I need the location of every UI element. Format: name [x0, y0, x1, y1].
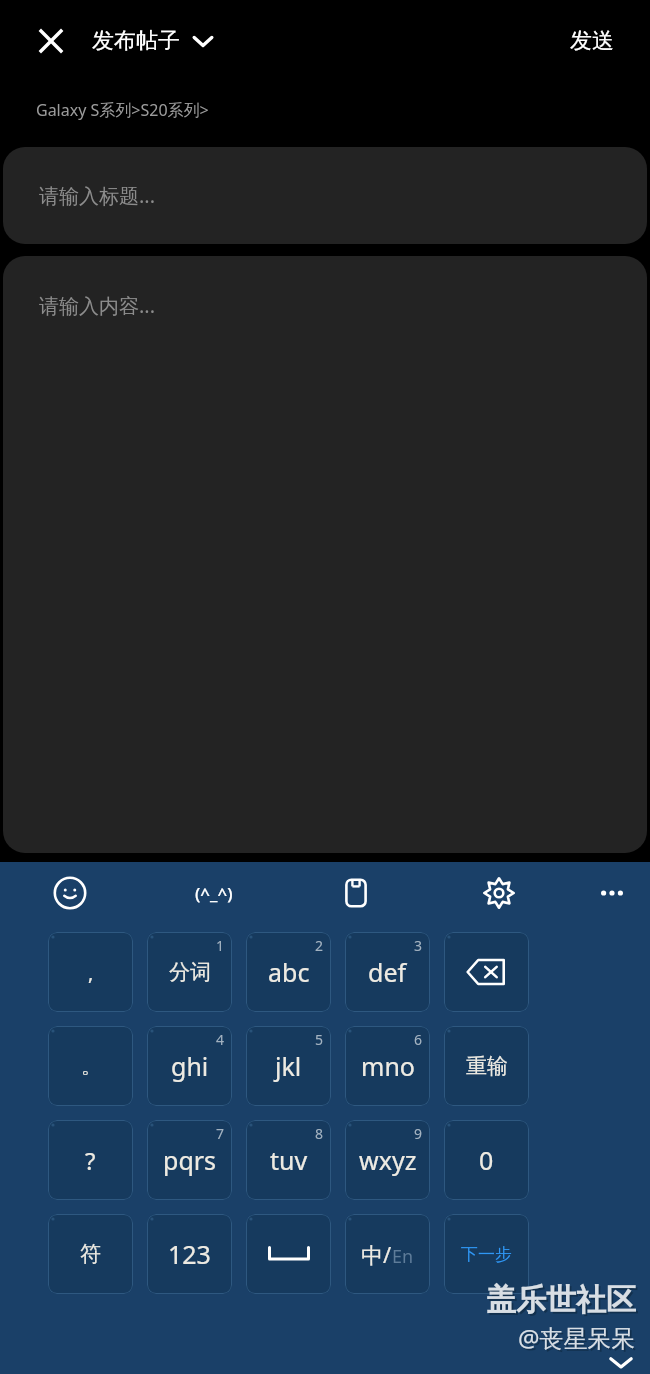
button[interactable]: jkl	[246, 1026, 331, 1106]
staticText: 盖乐世社区	[486, 1281, 636, 1319]
staticText: 请输入标题...	[39, 182, 156, 209]
staticText: En	[392, 1244, 414, 1269]
staticText: 7	[216, 1124, 225, 1143]
staticText: 5	[315, 1030, 324, 1049]
button[interactable]: 。	[48, 1026, 133, 1106]
staticText: abc	[268, 955, 310, 989]
button[interactable]: Settings	[473, 862, 525, 924]
staticText: ghi	[171, 1049, 209, 1083]
staticText: 0	[479, 1143, 494, 1177]
button[interactable]: ?	[48, 1120, 133, 1200]
button[interactable]: 重输	[444, 1026, 529, 1106]
staticText: 9	[414, 1124, 423, 1143]
button[interactable]: Galaxy S系列>S20系列>	[0, 82, 650, 138]
button[interactable]: More options	[586, 862, 638, 924]
button[interactable]: 发布帖子	[92, 27, 214, 55]
button[interactable]: abc	[246, 932, 331, 1012]
staticText: wxyz	[359, 1143, 417, 1177]
button[interactable]: 下一步	[444, 1214, 529, 1294]
staticText: 4	[216, 1030, 225, 1049]
staticText: Galaxy S系列>S20系列>	[36, 99, 209, 121]
staticText: 2	[315, 936, 324, 955]
staticText: 盖乐世社区	[488, 1283, 638, 1321]
staticText: 1	[216, 936, 225, 955]
button[interactable]: mno	[345, 1026, 430, 1106]
staticText: 6	[414, 1030, 423, 1049]
staticText: ,	[88, 959, 94, 986]
staticText: 符	[80, 1241, 101, 1267]
button[interactable]: 请输入内容...	[3, 256, 647, 853]
button[interactable]: 中/	[345, 1214, 430, 1294]
button[interactable]: wxyz	[345, 1120, 430, 1200]
staticText: (^_^)	[195, 882, 233, 905]
staticText: 。	[81, 1054, 101, 1079]
staticText: jkl	[275, 1049, 302, 1083]
button[interactable]: Backspace	[444, 932, 529, 1012]
staticText: 发送	[570, 27, 614, 55]
button[interactable]: Emoji	[44, 862, 96, 924]
staticText: mno	[361, 1049, 415, 1083]
staticText: 发布帖子	[92, 27, 180, 55]
button[interactable]: tuv	[246, 1120, 331, 1200]
staticText: tuv	[270, 1143, 308, 1177]
staticText: @丧星呆呆	[518, 1321, 636, 1354]
button[interactable]: 0	[444, 1120, 529, 1200]
staticText: def	[368, 955, 407, 989]
staticText: 123	[168, 1237, 211, 1271]
button[interactable]: Space	[246, 1214, 331, 1294]
staticText: @丧星呆呆	[520, 1323, 638, 1356]
staticText: 8	[315, 1124, 324, 1143]
button[interactable]: Close	[28, 18, 74, 64]
button[interactable]: def	[345, 932, 430, 1012]
staticText: 3	[414, 936, 423, 955]
staticText: 请输入内容...	[39, 292, 156, 319]
button[interactable]: 分词	[147, 932, 232, 1012]
staticText: 下一步	[461, 1244, 512, 1265]
button[interactable]: 发送	[564, 19, 620, 63]
button[interactable]: 符	[48, 1214, 133, 1294]
staticText: 分词	[169, 959, 211, 985]
button[interactable]: ghi	[147, 1026, 232, 1106]
button[interactable]: ,	[48, 932, 133, 1012]
button[interactable]: 请输入标题...	[3, 147, 647, 244]
staticText: 中/	[361, 1239, 392, 1269]
staticText: pqrs	[163, 1143, 217, 1177]
staticText: 重输	[466, 1053, 508, 1079]
button[interactable]: 123	[147, 1214, 232, 1294]
button[interactable]: pqrs	[147, 1120, 232, 1200]
staticText: ?	[85, 1144, 96, 1177]
button[interactable]: Clipboard	[330, 862, 382, 924]
button[interactable]: Kaomoji	[176, 862, 252, 924]
